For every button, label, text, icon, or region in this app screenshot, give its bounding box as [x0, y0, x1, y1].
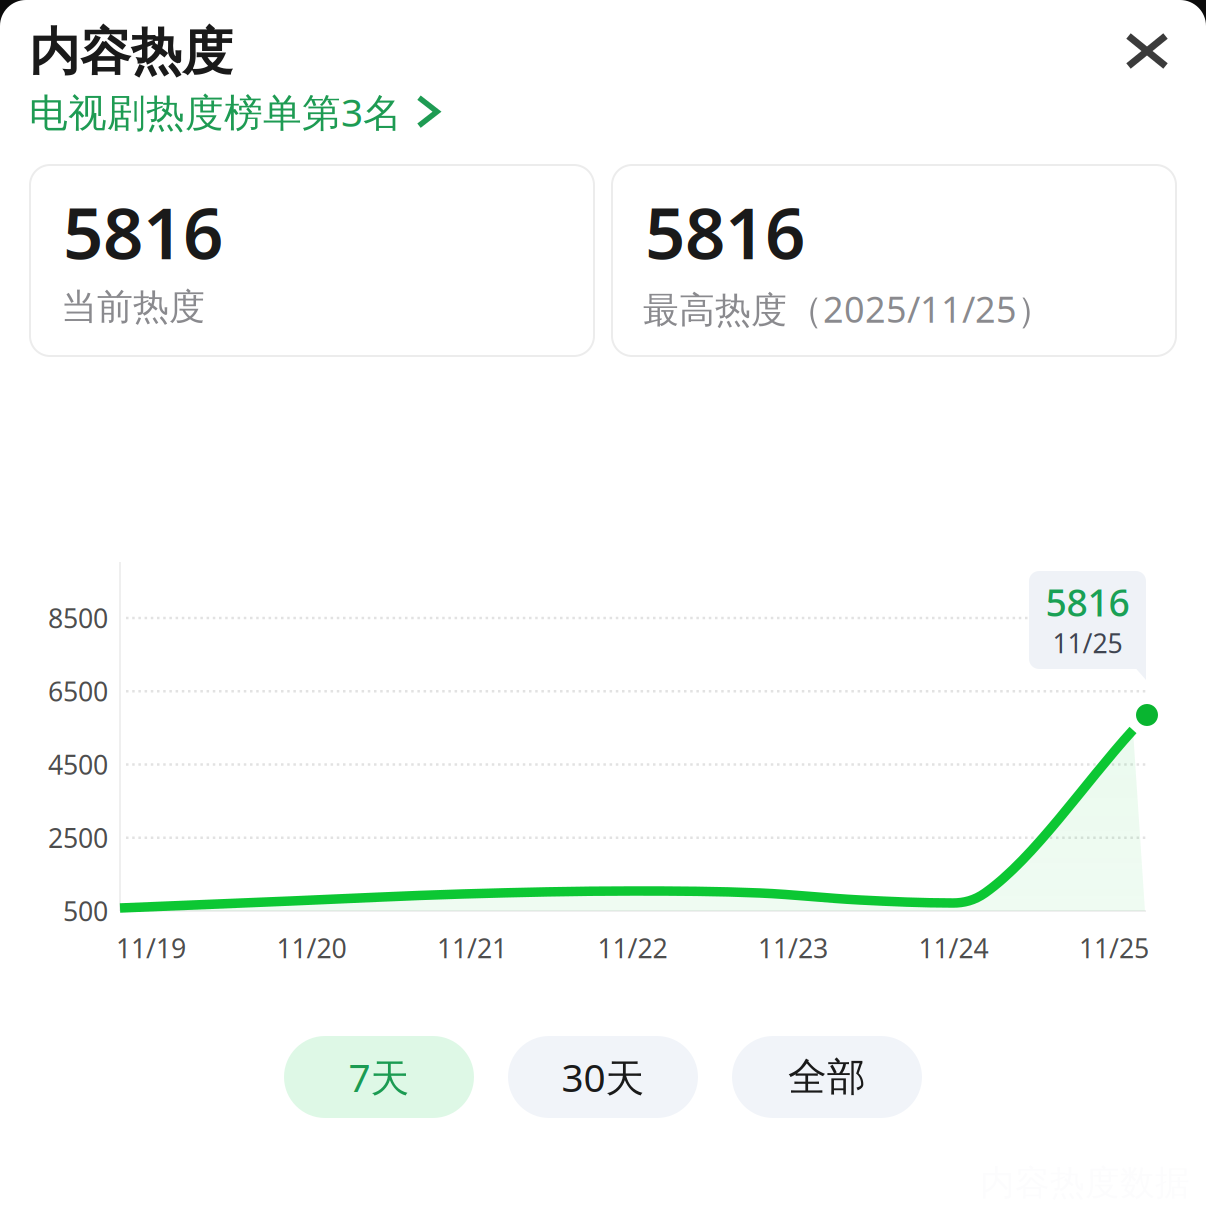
staticText: 当前热度 [61, 285, 205, 329]
staticText: 11/20 [276, 930, 346, 966]
staticText: 11/21 [437, 930, 507, 966]
staticText: 全部 [788, 1053, 866, 1101]
staticText: 6500 [48, 673, 108, 709]
button[interactable]: 7天 [284, 1036, 474, 1118]
staticText: 500 [63, 893, 108, 929]
staticText: 11/23 [758, 930, 828, 966]
button[interactable]: 全部 [732, 1036, 922, 1118]
staticText: 11/22 [597, 930, 667, 966]
staticText: 内容热度 [29, 21, 233, 83]
staticText: 11/19 [116, 930, 186, 966]
staticText: 11/25 [1079, 930, 1149, 966]
staticText: 4500 [48, 747, 108, 782]
staticText: 5816 [63, 185, 223, 279]
staticText: 电视剧热度榜单第3名 [29, 86, 402, 137]
staticText: 11/25 [1052, 625, 1122, 661]
staticText: 最高热度（2025/11/25） [643, 285, 1053, 333]
button[interactable]: 电视剧热度榜单第3名 [29, 86, 443, 137]
staticText: 7天 [348, 1051, 409, 1103]
staticText: 2500 [48, 820, 108, 855]
button[interactable]: Close [1106, 12, 1188, 89]
staticText: 5816 [645, 185, 805, 279]
staticText: 8500 [48, 600, 108, 636]
staticText: 11/24 [918, 930, 988, 966]
staticText: 5816 [1045, 577, 1129, 627]
staticText: 30天 [561, 1051, 644, 1103]
button[interactable]: 30天 [508, 1036, 698, 1118]
